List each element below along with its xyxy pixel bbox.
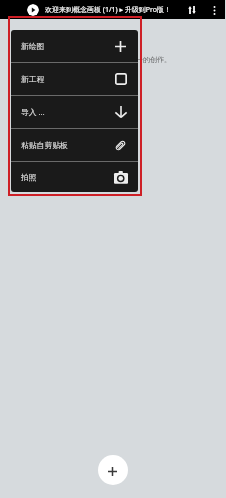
staticText: 导入 … — [21, 107, 45, 118]
staticText: 拍照 — [21, 172, 37, 182]
button[interactable]: 导入 … — [11, 96, 138, 128]
button[interactable]: Add — [98, 455, 128, 485]
staticText: 新工程 — [21, 74, 45, 84]
button[interactable]: Sort — [184, 2, 200, 18]
button[interactable]: Play — [27, 4, 39, 16]
staticText: 新绘图 — [21, 41, 45, 51]
button[interactable]: 新工程 — [11, 63, 138, 95]
button[interactable]: 拍照 — [11, 162, 138, 192]
button[interactable]: More options — [206, 2, 222, 18]
button[interactable]: 粘贴自剪贴板 — [11, 129, 138, 161]
staticText: 一的创作。 — [136, 55, 171, 64]
button[interactable]: 新绘图 — [11, 30, 138, 62]
staticText: 欢迎来到概念画板 (1/1) ▸ 升级到Pro版！ — [45, 5, 172, 15]
staticText: 粘贴自剪贴板 — [21, 140, 68, 150]
